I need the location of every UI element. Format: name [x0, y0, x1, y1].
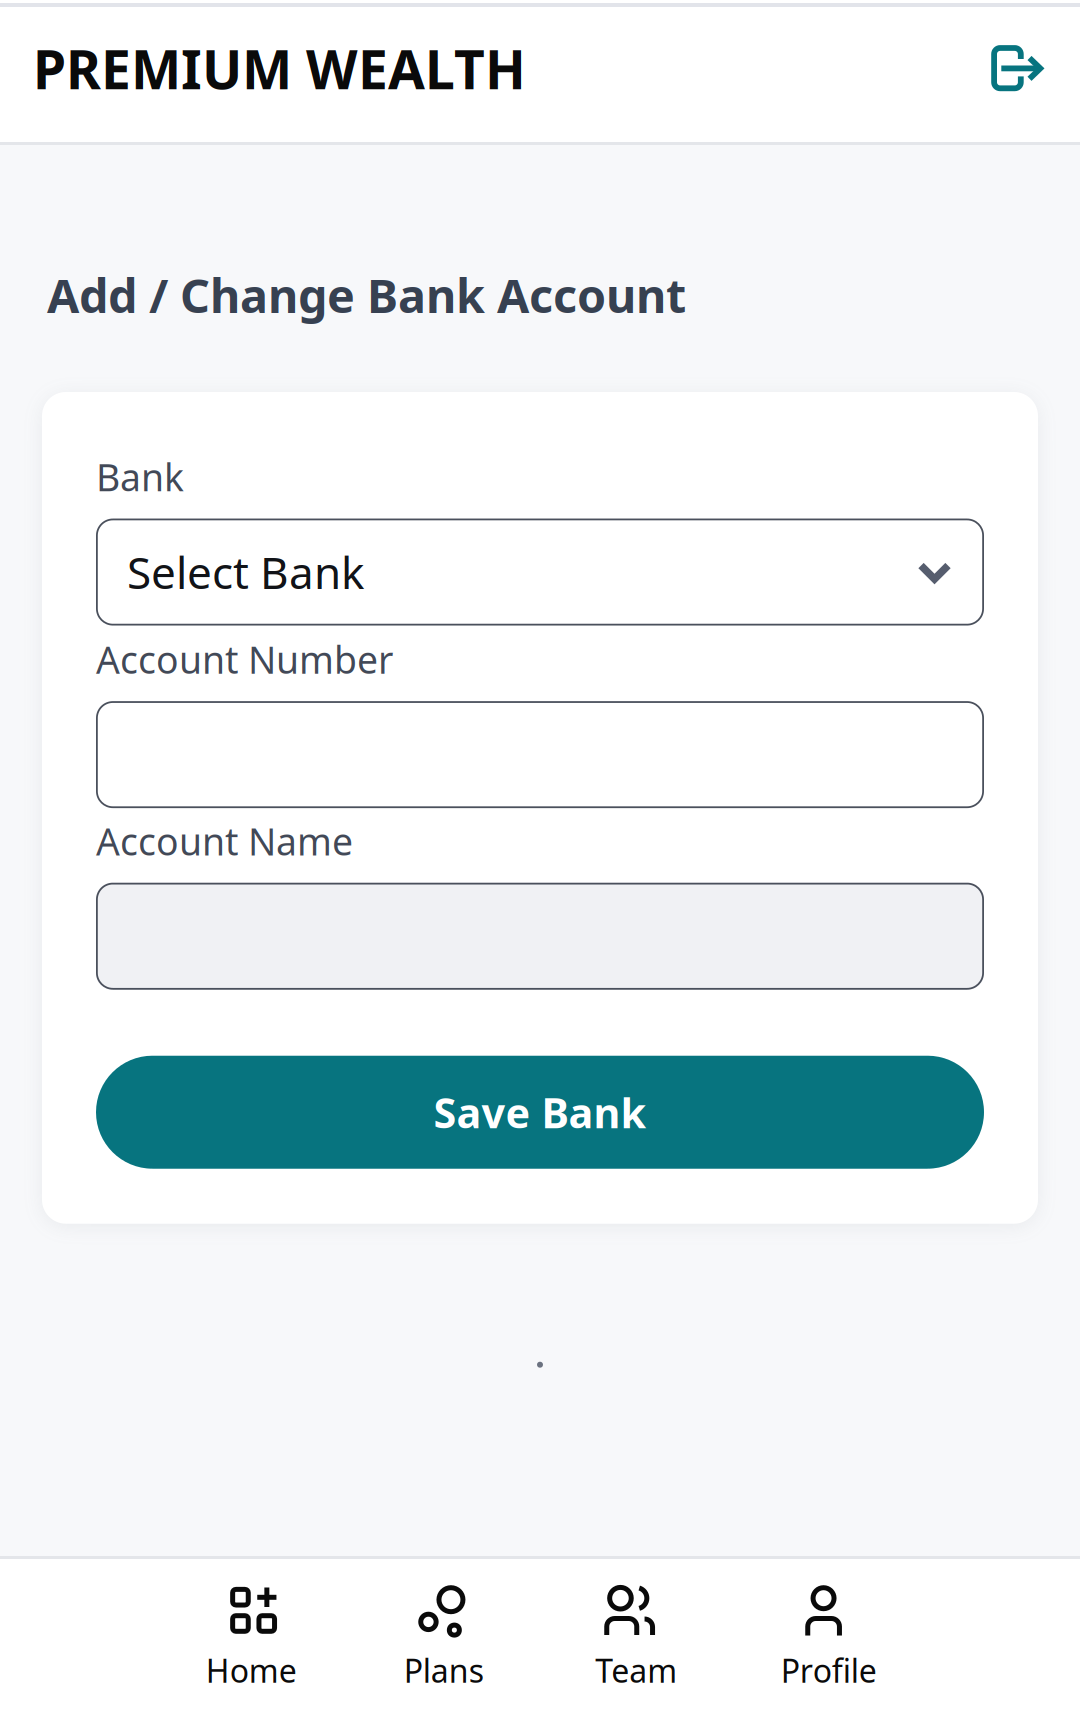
staticText: Team: [595, 1649, 677, 1691]
button[interactable]: Plans: [347, 1585, 540, 1691]
button[interactable]: Team: [540, 1585, 732, 1691]
staticText: Add / Change Bank Account: [47, 264, 686, 326]
staticText: Select Bank: [127, 543, 364, 601]
staticText: Save Bank: [433, 1085, 646, 1140]
button[interactable]: Log out: [991, 45, 1044, 92]
button[interactable]: Account Number: [96, 701, 984, 808]
button[interactable]: Profile: [732, 1585, 925, 1691]
button[interactable]: Save Bank: [96, 1056, 984, 1169]
staticText: Bank: [96, 452, 184, 502]
button[interactable]: Select Bank: [96, 518, 984, 625]
staticText: Profile: [781, 1649, 877, 1691]
staticText: Account Number: [96, 634, 393, 684]
staticText: Home: [206, 1649, 297, 1691]
staticText: PREMIUM WEALTH: [33, 33, 526, 104]
staticText: Plans: [404, 1649, 484, 1691]
staticText: Account Name: [96, 816, 353, 866]
button[interactable]: Home: [155, 1585, 347, 1691]
